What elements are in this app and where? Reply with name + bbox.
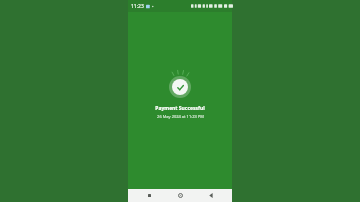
staticText: Payment Successful xyxy=(155,105,205,112)
button[interactable]: Home xyxy=(170,189,190,202)
button[interactable]: Recent apps xyxy=(139,189,159,202)
staticText: 26 May 2024 at 11:23 PM xyxy=(157,114,204,119)
other: Payment successful xyxy=(165,72,195,102)
button[interactable]: Back xyxy=(201,189,221,202)
staticText: 11:23 xyxy=(131,3,144,10)
